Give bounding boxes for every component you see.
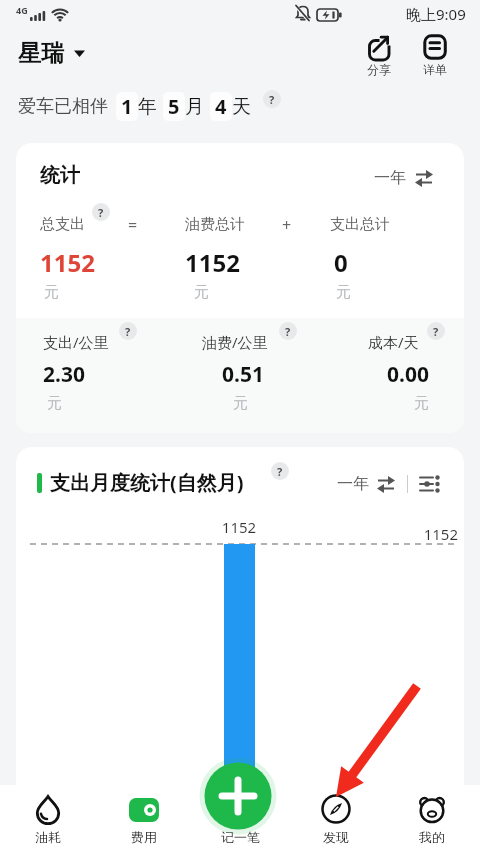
button[interactable]: 费用 — [96, 785, 192, 853]
button[interactable]: 星瑞 — [18, 39, 86, 68]
staticText: 1152 — [185, 246, 240, 279]
staticText: ? — [433, 324, 439, 339]
staticText: 爱车已相伴 — [18, 95, 108, 118]
staticText: ? — [98, 205, 104, 220]
staticText: ? — [285, 324, 291, 339]
staticText: 元 — [194, 283, 209, 302]
staticText: 详单 — [423, 62, 447, 77]
staticText: 成本/天 — [368, 332, 419, 352]
staticText: 总支出 — [40, 215, 85, 234]
button[interactable]: 记一笔 — [192, 785, 288, 853]
button[interactable]: 一年 — [374, 167, 435, 189]
staticText: 支出/公里 — [43, 332, 109, 352]
staticText: 元 — [414, 394, 429, 413]
staticText: 1152 — [396, 524, 458, 544]
staticText: 一年 — [374, 168, 406, 188]
staticText: 星瑞 — [18, 39, 64, 68]
staticText: 5 — [168, 93, 180, 120]
staticText: 油耗 — [35, 829, 61, 845]
button[interactable]: 油耗 — [0, 785, 96, 853]
staticText: 1152 — [40, 246, 95, 279]
staticText: 油费总计 — [185, 215, 245, 234]
button[interactable]: 我的 — [384, 785, 480, 853]
staticText: 元 — [336, 283, 351, 302]
staticText: 天 — [232, 95, 251, 119]
staticText: 统计 — [40, 163, 80, 188]
button[interactable] — [199, 757, 277, 835]
staticText: 月 — [185, 95, 204, 119]
button[interactable]: 爱车已相伴 — [18, 92, 281, 121]
staticText: 元 — [47, 394, 62, 413]
staticText: + — [282, 214, 292, 236]
button[interactable] — [418, 473, 440, 495]
staticText: 0 — [334, 246, 348, 279]
staticText: 4 — [215, 93, 227, 120]
staticText: 年 — [138, 95, 157, 119]
staticText: 支出月度统计(自然月) — [50, 469, 244, 496]
staticText: = — [128, 214, 138, 236]
staticText: ? — [277, 464, 283, 479]
staticText: 1 — [121, 93, 133, 120]
staticText: 2.30 — [43, 360, 85, 389]
staticText: 元 — [233, 394, 248, 413]
staticText: 记一笔 — [221, 829, 260, 845]
staticText: 我的 — [419, 829, 445, 845]
button[interactable]: 详单 — [423, 35, 447, 77]
staticText: 发现 — [323, 829, 349, 845]
button[interactable]: 一年 — [337, 473, 397, 495]
staticText: 油费/公里 — [202, 332, 268, 352]
staticText: 元 — [44, 283, 59, 302]
staticText: 支出总计 — [330, 215, 390, 234]
button[interactable]: 分享 — [367, 35, 391, 77]
staticText: 1152 — [208, 517, 270, 537]
staticText: ? — [125, 324, 131, 339]
staticText: 0.51 — [222, 360, 264, 389]
staticText: 晚上9:09 — [406, 4, 466, 24]
staticText: 一年 — [337, 474, 369, 494]
staticText: 分享 — [367, 62, 391, 77]
staticText: 4G — [16, 4, 28, 16]
button[interactable]: 发现 — [288, 785, 384, 853]
staticText: 费用 — [131, 829, 157, 845]
staticText: 0.00 — [387, 360, 429, 389]
staticText: ? — [269, 92, 275, 107]
